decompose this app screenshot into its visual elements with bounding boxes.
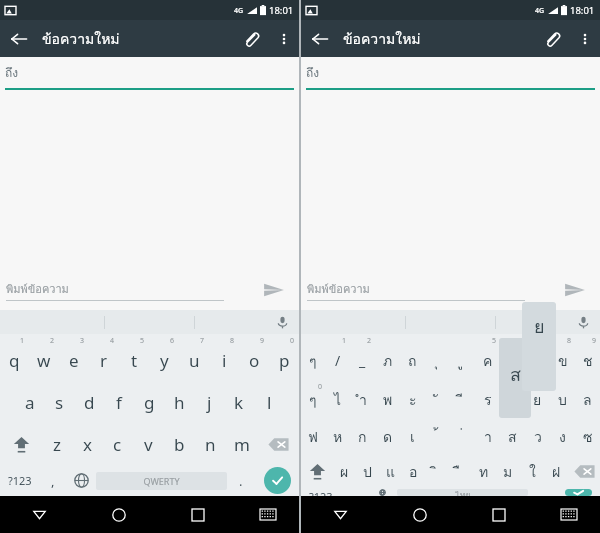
button[interactable]: ่ (450, 419, 475, 454)
button[interactable]: ย (525, 381, 550, 419)
button[interactable]: Recent apps (158, 496, 237, 533)
button[interactable]: Back (0, 496, 79, 533)
button[interactable]: ห (325, 419, 350, 454)
button[interactable]: น (500, 381, 525, 419)
button[interactable]: 1 (0, 334, 29, 381)
button[interactable]: c (102, 423, 133, 465)
button[interactable]: 7 (179, 334, 209, 381)
button[interactable]: พิมพ์ข้อความ (307, 280, 525, 301)
button[interactable]: ะ (400, 381, 425, 419)
button[interactable]: 6 (500, 334, 525, 381)
button[interactable]: QWERTY (96, 472, 227, 490)
button[interactable]: ำ (350, 381, 375, 419)
button[interactable]: m (226, 423, 257, 465)
button[interactable]: Backspace (568, 454, 600, 489)
button[interactable]: 8 (550, 334, 575, 381)
button[interactable]: ส (500, 419, 525, 454)
button[interactable]: 2 (350, 334, 375, 381)
button[interactable]: แ (379, 454, 402, 489)
button[interactable]: 2 (29, 334, 59, 381)
button[interactable]: ด (375, 419, 400, 454)
button[interactable]: ผ (333, 454, 356, 489)
button[interactable]: More options (570, 24, 600, 54)
button[interactable]: 9 (239, 334, 269, 381)
button[interactable]: ?123 (0, 465, 40, 496)
button[interactable]: , (40, 465, 66, 496)
button[interactable]: Enter (556, 489, 600, 496)
button[interactable]: อ (402, 454, 425, 489)
button[interactable]: Send (257, 273, 291, 307)
button[interactable]: ใ (520, 454, 544, 489)
button[interactable]: ู (450, 334, 475, 381)
button[interactable]: g (134, 381, 164, 423)
button[interactable]: Recent apps (459, 496, 538, 533)
button[interactable]: ถึง (0, 57, 299, 92)
button[interactable]: ?123 (301, 489, 341, 496)
button[interactable]: l (254, 381, 284, 423)
button[interactable]: ไทย (397, 489, 528, 496)
button[interactable]: 0 (269, 334, 299, 381)
button[interactable]: Back (0, 20, 37, 57)
button[interactable]: ั (425, 381, 450, 419)
button[interactable]: พิมพ์ข้อความ (6, 280, 224, 301)
button[interactable]: า (475, 419, 500, 454)
button[interactable]: 0 (301, 381, 325, 419)
button[interactable]: h (164, 381, 194, 423)
button[interactable]: ร (475, 381, 500, 419)
button[interactable]: ก (350, 419, 375, 454)
button[interactable]: 9 (575, 334, 600, 381)
button[interactable]: ุ (425, 334, 450, 381)
button[interactable]: x (72, 423, 102, 465)
button[interactable]: ป (356, 454, 379, 489)
button[interactable]: 6 (149, 334, 179, 381)
button[interactable]: 4 (89, 334, 119, 381)
button[interactable]: Backspace (257, 423, 299, 465)
button[interactable]: Hide keyboard (237, 496, 299, 533)
button[interactable]: Home (79, 496, 158, 533)
button[interactable]: ิ (425, 454, 448, 489)
button[interactable]: a (15, 381, 44, 423)
button[interactable]: Voice input (271, 311, 293, 333)
button[interactable]: 5 (119, 334, 149, 381)
button[interactable]: พ (375, 381, 400, 419)
button[interactable]: ฝ (544, 454, 568, 489)
button[interactable]: ๆ (301, 334, 325, 381)
button[interactable]: Voice input (572, 311, 594, 333)
button[interactable]: ภ (375, 334, 400, 381)
button[interactable]: Shift (301, 454, 333, 489)
button[interactable]: 1 (325, 334, 350, 381)
button[interactable]: Back (301, 20, 338, 57)
button[interactable]: . (227, 465, 255, 496)
button[interactable]: v (133, 423, 164, 465)
button[interactable]: ถึง (301, 57, 600, 92)
button[interactable]: s (44, 381, 74, 423)
button[interactable]: ซ (575, 419, 600, 454)
button[interactable]: 5 (475, 334, 500, 381)
button[interactable]: ี (450, 381, 475, 419)
button[interactable]: Attach (534, 21, 570, 57)
button[interactable]: ฟ (301, 419, 325, 454)
button[interactable]: 8 (209, 334, 239, 381)
button[interactable]: ง (550, 419, 575, 454)
button[interactable]: ท (472, 454, 496, 489)
button[interactable]: Change keyboard (66, 465, 96, 496)
button[interactable]: เ (400, 419, 425, 454)
button[interactable]: Shift (0, 423, 42, 465)
button[interactable]: n (195, 423, 226, 465)
button[interactable]: ม (496, 454, 520, 489)
button[interactable]: ไ (325, 381, 350, 419)
button[interactable]: ื (448, 454, 472, 489)
button[interactable]: Hide keyboard (538, 496, 600, 533)
button[interactable]: Send (558, 273, 592, 307)
button[interactable]: ถ (400, 334, 425, 381)
button[interactable]: z (42, 423, 72, 465)
button[interactable]: Attach (233, 21, 269, 57)
button[interactable]: Home (380, 496, 459, 533)
button[interactable]: f (104, 381, 134, 423)
button[interactable]: Back (301, 496, 380, 533)
button[interactable]: b (164, 423, 195, 465)
button[interactable]: j (194, 381, 224, 423)
